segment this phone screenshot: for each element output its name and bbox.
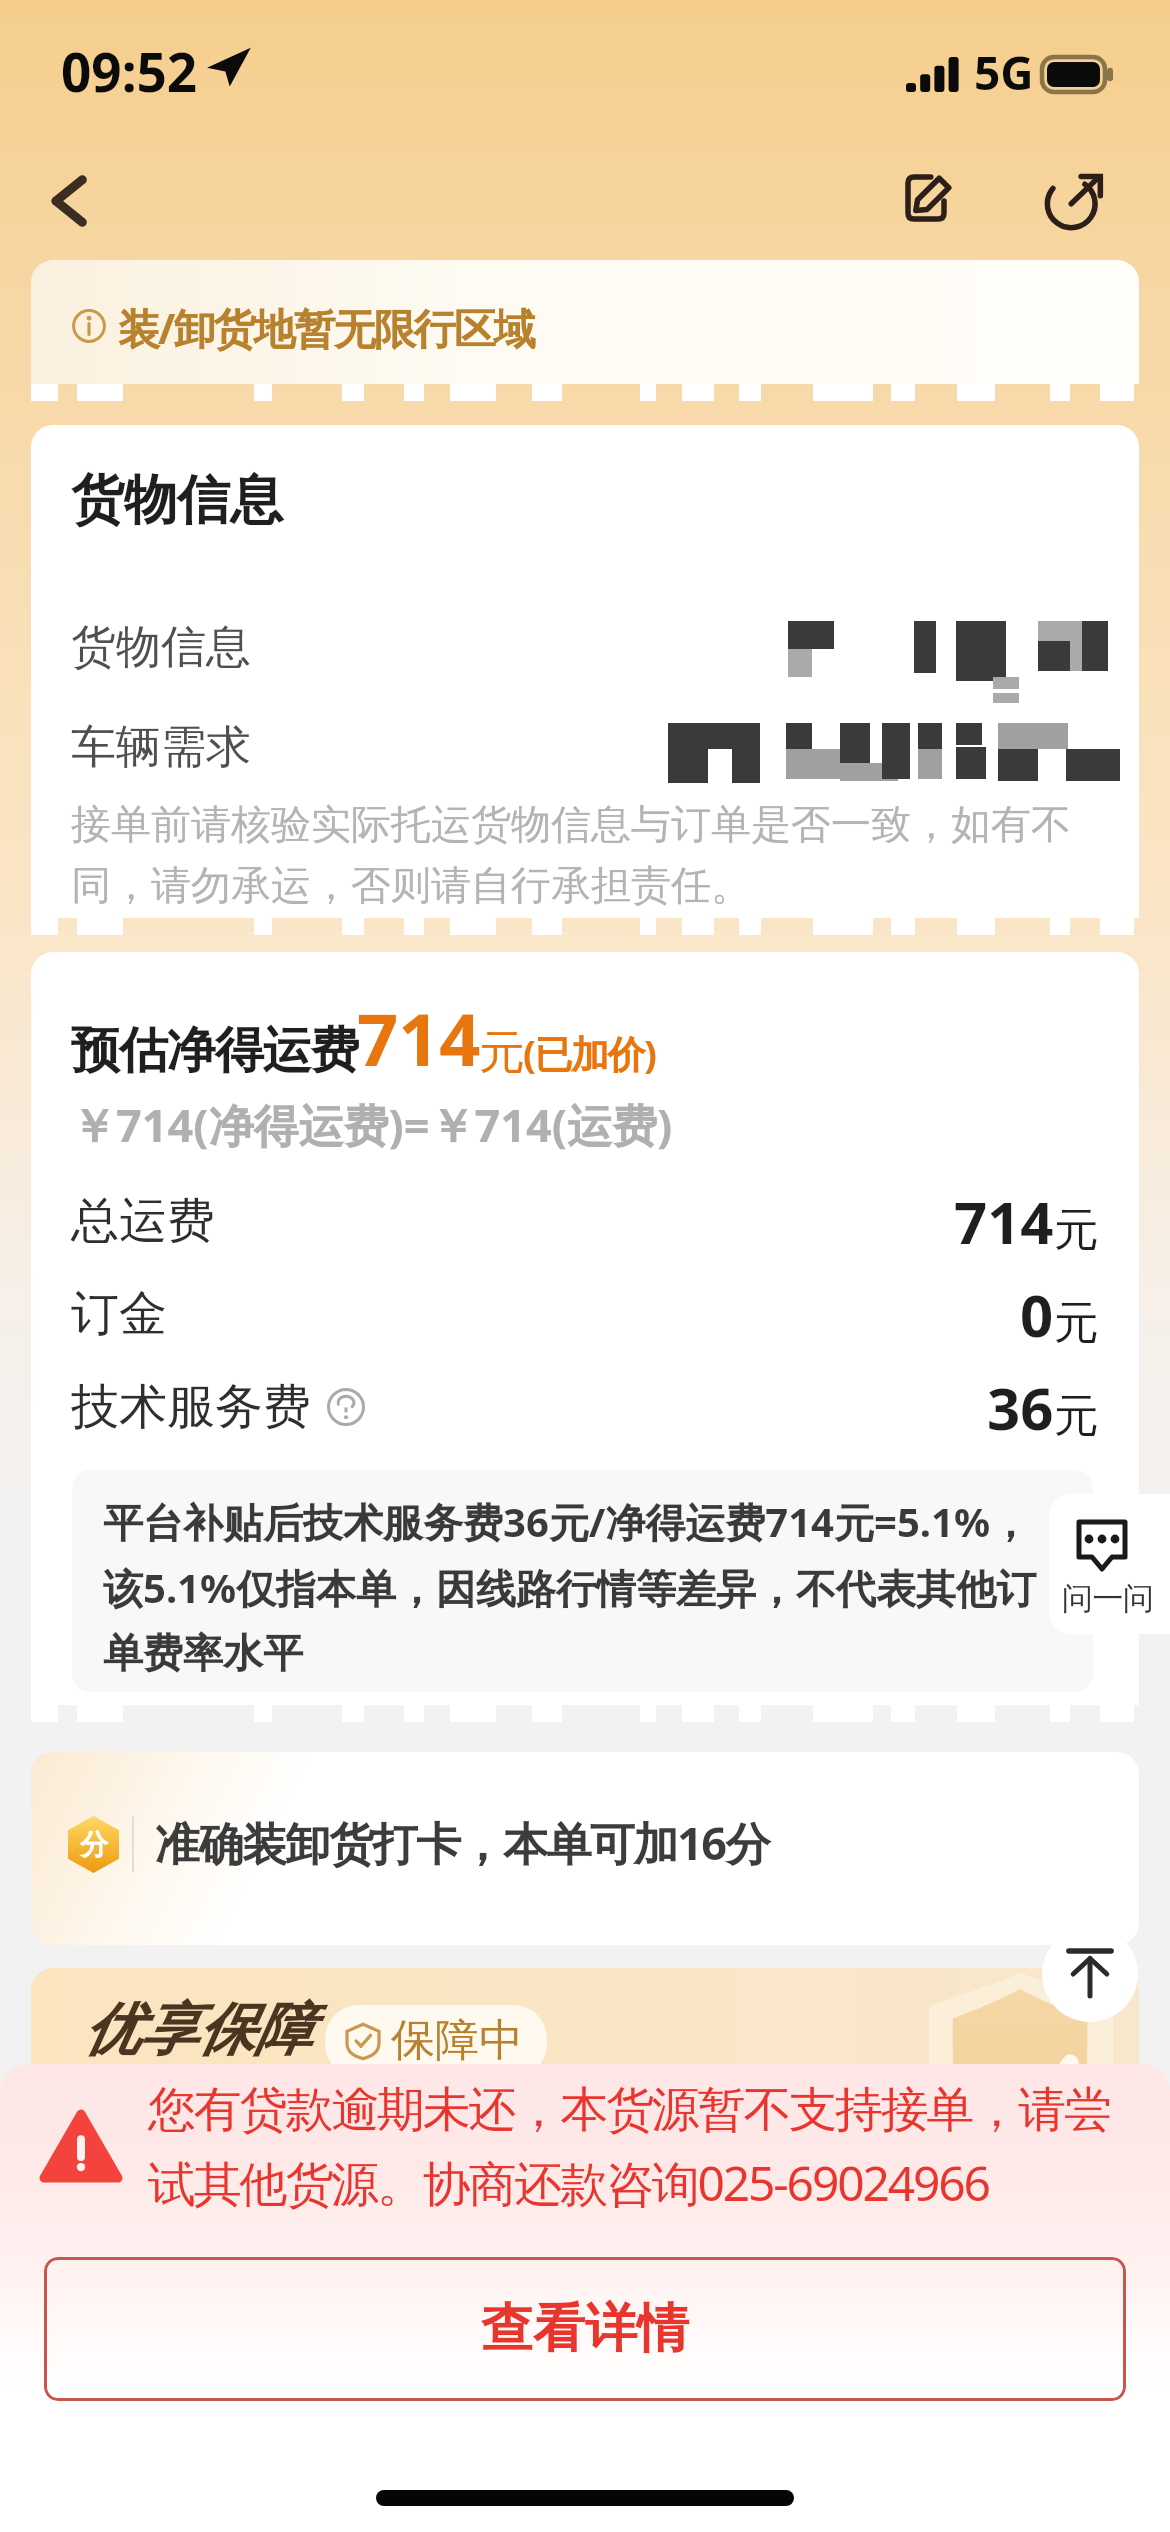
staticText: 接单前请核验实际托运货物信息与订单是否一致，如有不同，请勿承运，否则请自行承担责… <box>71 799 1099 911</box>
staticText: 技术服务费 <box>71 1377 311 1437</box>
staticText: 元 <box>1054 1388 1099 1445</box>
staticText: (已加价) <box>523 1027 656 1079</box>
staticText: 保障中 <box>391 2013 523 2068</box>
staticText: 货物信息 <box>71 619 251 676</box>
button[interactable]: 分 <box>31 1752 1139 1945</box>
button[interactable]: 分享 <box>1030 157 1118 245</box>
staticText: 714 <box>954 1182 1054 1261</box>
staticText: 714 <box>357 989 481 1087</box>
button[interactable]: 编辑 <box>882 157 970 245</box>
staticText: 5G <box>974 41 1034 104</box>
staticText: 预估净得运费 <box>71 1020 358 1082</box>
staticText: 元 <box>1054 1202 1099 1259</box>
staticText: 准确装卸货打卡，本单可加16分 <box>155 1812 769 1873</box>
staticText: ￥714(净得运费)=￥714(运费) <box>71 1094 673 1155</box>
button[interactable]: 回到顶部 <box>1042 1926 1138 2022</box>
staticText: 车辆需求 <box>71 719 251 776</box>
staticText: 分 <box>80 1827 108 1862</box>
staticText: 查看详情 <box>481 2296 689 2362</box>
staticText: 平台补贴后技术服务费36元/净得运费714元=5.1%，该5.1%仅指本单，因线… <box>103 1494 1043 1679</box>
staticText: 元 <box>1054 1295 1099 1352</box>
staticText: 您有贷款逾期未还，本货源暂不支持接单，请尝试其他货源。协商还款咨询025-690… <box>148 2080 1136 2215</box>
staticText: 优享保障 <box>83 1994 311 2066</box>
staticText: 元 <box>479 1024 525 1082</box>
staticText: 货物信息 <box>71 467 283 534</box>
staticText: 09:52 <box>61 35 198 107</box>
button[interactable]: 问一问 <box>1049 1494 1170 1634</box>
staticText: 36 <box>987 1368 1054 1447</box>
staticText: 0 <box>1020 1275 1054 1354</box>
button[interactable]: 查看详情 <box>44 2257 1126 2401</box>
button[interactable] <box>31 260 1139 384</box>
staticText: 问一问 <box>1062 1579 1154 1618</box>
button[interactable]: 优享保障 <box>31 1968 1139 2208</box>
button[interactable]: 返回 <box>26 157 114 245</box>
staticText: 订金 <box>71 1284 167 1344</box>
staticText: 装/卸货地暂无限行区域 <box>118 299 534 356</box>
staticText: 总运费 <box>71 1191 215 1251</box>
